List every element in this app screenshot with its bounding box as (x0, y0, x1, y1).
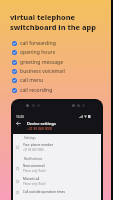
button[interactable]: Your phone number (16, 143, 98, 152)
staticText: +31 85 060 9000 (23, 148, 44, 152)
staticText: call menu (20, 77, 44, 84)
staticText: call forwarding (20, 40, 56, 47)
staticText: switchboard in the app (10, 22, 96, 32)
button[interactable]: opening hours (12, 48, 56, 57)
staticText: Phone only (Push) (23, 182, 46, 186)
button[interactable]: business voicemail (12, 67, 65, 76)
staticText: Missed call (23, 177, 40, 181)
staticText: 14:25 (16, 115, 25, 119)
staticText: virtual telephone (10, 12, 76, 22)
staticText: Your phone number (23, 143, 54, 147)
staticText: Notifications (24, 157, 43, 161)
staticText: Device settings (27, 121, 56, 126)
button[interactable]: New voicemail (16, 164, 98, 173)
button[interactable]: call recording (12, 86, 53, 95)
button[interactable]: Call outside operation times (16, 190, 98, 194)
staticText: business voicemail (20, 68, 65, 75)
staticText: opening hours (20, 49, 56, 56)
staticText: Settings (24, 136, 36, 140)
staticText: Phone only (Push) (23, 169, 46, 173)
staticText: greeting message (20, 59, 64, 66)
button[interactable]: Back (16, 121, 21, 126)
button[interactable]: call menu (12, 76, 44, 85)
button[interactable]: call forwarding (12, 39, 56, 48)
button[interactable]: greeting message (12, 58, 64, 67)
staticText: +31 85 060 9000 (27, 126, 53, 130)
staticText: call recording (20, 87, 53, 94)
staticText: Call outside operation times (23, 190, 65, 194)
staticText: New voicemail (23, 164, 45, 168)
button[interactable]: Missed call (16, 177, 98, 186)
